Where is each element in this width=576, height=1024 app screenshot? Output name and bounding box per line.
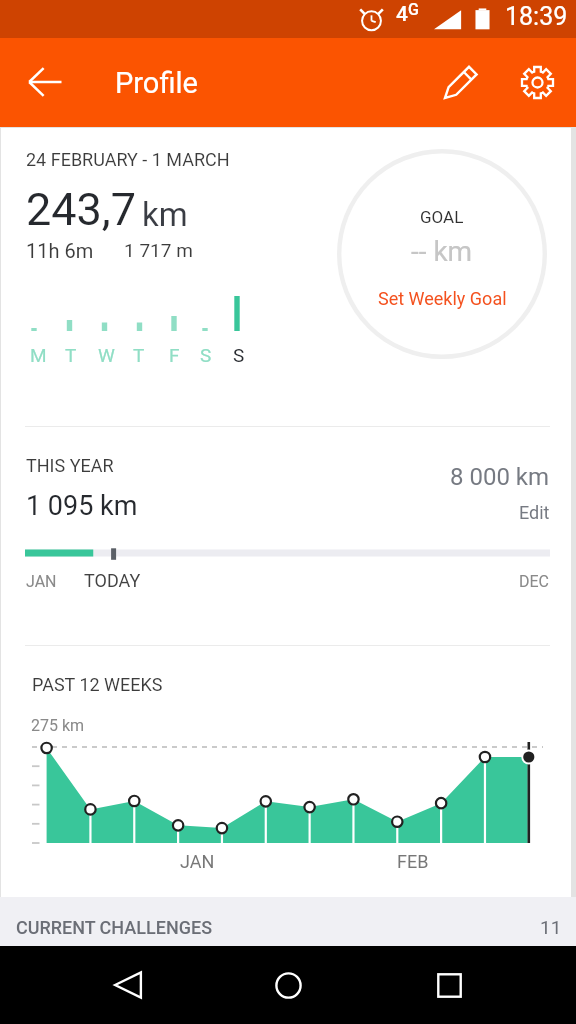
staticText: Set Weekly Goal [378, 288, 507, 309]
staticText: 4 [396, 2, 408, 27]
button[interactable]: Home [255, 952, 321, 1018]
button[interactable]: Recents [416, 952, 482, 1018]
staticText: T [133, 344, 145, 366]
staticText: 18:39 [505, 2, 568, 31]
staticText: W [98, 344, 115, 366]
staticText: CURRENT CHALLENGES [16, 917, 213, 938]
button[interactable]: Settings [506, 51, 568, 113]
staticText: 243,7 [26, 183, 137, 236]
staticText: JAN [26, 572, 57, 591]
staticText: PAST 12 WEEKS [32, 674, 163, 695]
staticText: M [30, 344, 47, 366]
staticText: 1 717 m [124, 239, 193, 261]
staticText: DEC [519, 572, 550, 591]
button[interactable]: GOAL [337, 149, 547, 359]
staticText: 275 km [31, 716, 85, 735]
staticText: JAN [180, 851, 215, 872]
button[interactable]: Edit [431, 50, 493, 112]
staticText: GOAL [420, 207, 464, 227]
staticText: TODAY [84, 570, 141, 591]
button[interactable]: Edit [519, 502, 550, 523]
staticText: -- km [411, 235, 473, 268]
staticText: 11h 6m [26, 239, 94, 262]
staticText: km [142, 195, 188, 234]
button[interactable]: Back [17, 54, 73, 110]
staticText: G [408, 0, 419, 19]
staticText: 24 FEBRUARY - 1 MARCH [26, 149, 230, 170]
button[interactable]: Back [95, 952, 161, 1018]
staticText: 11 [540, 916, 562, 938]
staticText: F [169, 344, 180, 366]
staticText: 8 000 km [450, 463, 550, 491]
staticText: Profile [115, 66, 198, 100]
button[interactable]: CURRENT CHALLENGES [0, 897, 576, 946]
staticText: T [65, 344, 77, 366]
staticText: S [200, 344, 212, 366]
staticText: FEB [397, 851, 429, 872]
staticText: 1 095 km [26, 490, 138, 522]
staticText: S [233, 344, 245, 366]
staticText: THIS YEAR [26, 455, 114, 476]
